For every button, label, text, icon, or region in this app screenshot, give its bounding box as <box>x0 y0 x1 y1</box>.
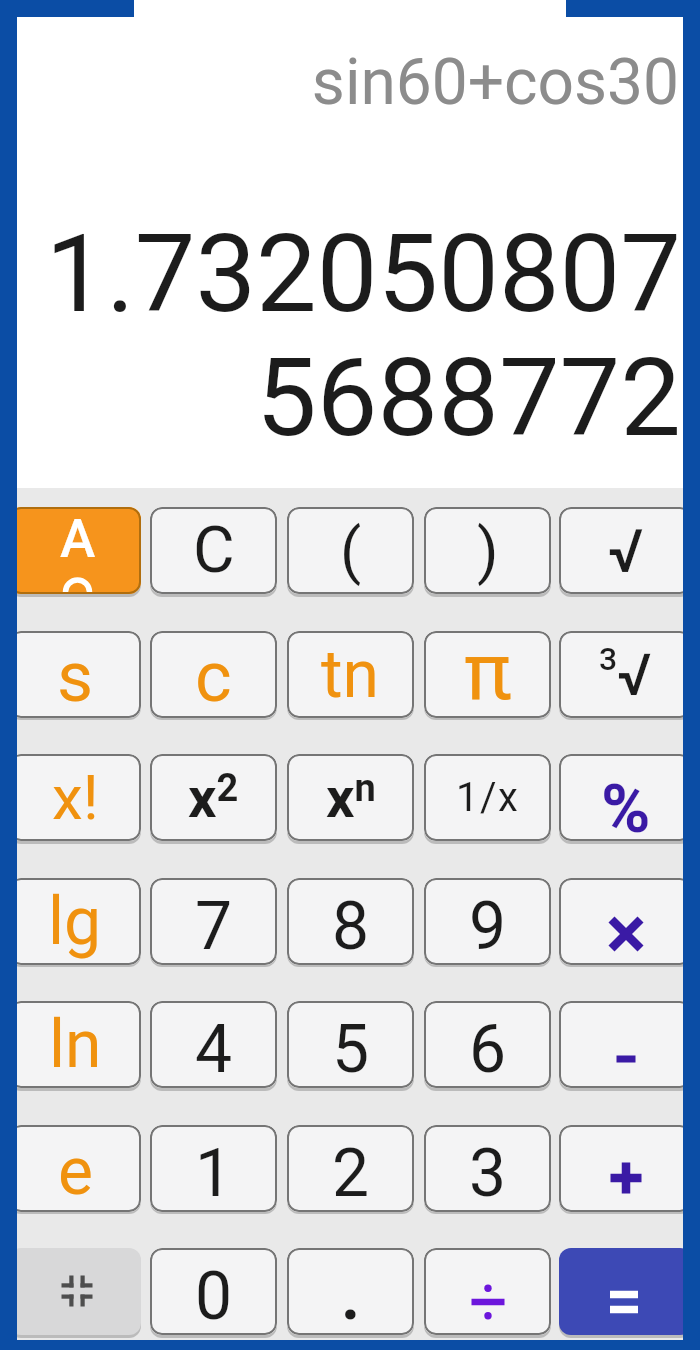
button[interactable]: xn <box>287 754 414 841</box>
button[interactable]: 7 <box>150 878 277 965</box>
staticText: ( <box>340 514 362 587</box>
staticText: tn <box>321 636 380 713</box>
button[interactable]: 1 <box>150 1125 277 1212</box>
staticText: c <box>195 636 232 718</box>
button[interactable]: . <box>287 1248 414 1335</box>
staticText: 0 <box>195 1258 233 1335</box>
button[interactable]: π <box>424 631 551 718</box>
button[interactable]: c <box>150 631 277 718</box>
staticText: 4 <box>195 1011 233 1088</box>
staticText: sin60+cos30 <box>0 45 679 120</box>
button[interactable]: lg <box>9 878 141 965</box>
button[interactable] <box>559 1248 692 1335</box>
button[interactable]: √ <box>559 507 692 594</box>
staticText: x! <box>52 761 99 834</box>
staticText: x2 <box>188 765 239 831</box>
staticText: s <box>57 636 94 718</box>
button[interactable]: 2 <box>287 1125 414 1212</box>
button[interactable] <box>424 1248 551 1335</box>
button[interactable]: % <box>559 754 692 841</box>
staticText: lg <box>48 883 102 960</box>
button[interactable]: ) <box>424 507 551 594</box>
button[interactable]: x! <box>9 754 141 841</box>
button[interactable]: 3 <box>424 1125 551 1212</box>
staticText: 3√ <box>599 640 652 709</box>
button[interactable]: 0 <box>150 1248 277 1335</box>
staticText: 2 <box>332 1135 370 1212</box>
button[interactable] <box>559 878 692 965</box>
staticText: 1.732050807 5688772 <box>0 211 681 462</box>
staticText: π <box>464 631 512 712</box>
button[interactable] <box>9 1248 141 1335</box>
staticText: % <box>601 770 651 841</box>
staticText: 7 <box>195 888 233 965</box>
staticText: ) <box>477 514 499 587</box>
button[interactable]: 5 <box>287 1001 414 1088</box>
staticText: √ <box>608 516 644 586</box>
staticText: xn <box>326 765 376 831</box>
button[interactable] <box>559 1001 692 1088</box>
button[interactable]: 1/x <box>424 754 551 841</box>
staticText: . <box>341 1258 361 1335</box>
button[interactable]: 4 <box>150 1001 277 1088</box>
button[interactable]: A <box>9 507 141 594</box>
button[interactable]: ( <box>287 507 414 594</box>
button[interactable]: ln <box>9 1001 141 1088</box>
staticText: A <box>60 508 96 570</box>
staticText: ln <box>49 1006 102 1083</box>
staticText: 9 <box>469 888 507 965</box>
button[interactable]: tn <box>287 631 414 718</box>
staticText: 6 <box>469 1011 507 1088</box>
staticText: 8 <box>332 888 370 965</box>
staticText: 5 <box>332 1011 370 1088</box>
button[interactable]: 8 <box>287 878 414 965</box>
staticText: e <box>58 1133 93 1210</box>
button[interactable]: 3√ <box>559 631 692 718</box>
button[interactable]: 9 <box>424 878 551 965</box>
button[interactable] <box>559 1125 692 1212</box>
staticText: 1 <box>195 1135 233 1212</box>
staticText: 1/x <box>456 774 520 821</box>
staticText: C <box>193 513 235 588</box>
staticText: 3 <box>469 1135 507 1212</box>
button[interactable]: e <box>9 1125 141 1212</box>
button[interactable]: 6 <box>424 1001 551 1088</box>
button[interactable]: x2 <box>150 754 277 841</box>
button[interactable]: s <box>9 631 141 718</box>
button[interactable]: C <box>150 507 277 594</box>
